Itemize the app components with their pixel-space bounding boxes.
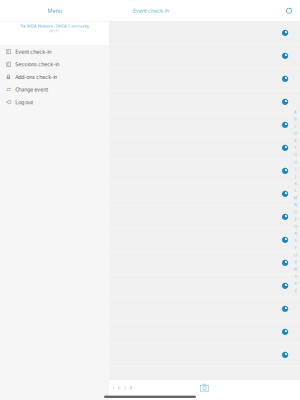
staticText: Event check-in — [15, 48, 51, 55]
staticText: The MBA Network - EMEA Community — [20, 23, 89, 29]
button[interactable]: The MBA Network - EMEA Community — [0, 22, 109, 45]
staticText: Change event — [15, 86, 48, 93]
button[interactable] — [109, 298, 300, 321]
button[interactable]: Section index — [292, 111, 299, 291]
staticText: C — [294, 123, 297, 129]
staticText: W — [293, 266, 297, 272]
button[interactable]: Menu — [0, 0, 109, 21]
staticText: I — [295, 166, 296, 172]
button[interactable] — [109, 91, 300, 114]
staticText: 0 — [118, 385, 120, 390]
staticText: A — [294, 109, 297, 114]
staticText: Z — [294, 288, 296, 293]
button[interactable]: Log out — [0, 96, 109, 108]
button[interactable] — [109, 275, 300, 298]
staticText: D — [294, 131, 297, 136]
button[interactable] — [109, 45, 300, 68]
button[interactable] — [109, 206, 300, 229]
staticText: Y — [294, 281, 296, 286]
staticText: V — [294, 259, 296, 265]
button[interactable] — [109, 321, 300, 344]
staticText: M — [293, 195, 297, 200]
button[interactable] — [109, 344, 300, 367]
staticText: L — [294, 188, 296, 193]
button[interactable]: Add-ons check-in — [0, 71, 109, 83]
button[interactable]: Sessions check-in — [0, 58, 109, 71]
staticText: Menu — [47, 7, 61, 14]
staticText: F — [294, 145, 296, 150]
staticText: Event check-in — [133, 7, 169, 14]
staticText: O — [294, 209, 297, 215]
staticText: J — [295, 173, 296, 179]
button[interactable]: Scan QR code — [200, 383, 209, 392]
staticText: G — [294, 152, 297, 157]
button[interactable]: Event check-in — [0, 45, 109, 58]
button[interactable] — [109, 68, 300, 91]
staticText: U — [294, 252, 297, 257]
staticText: K — [294, 181, 296, 186]
staticText: R — [294, 231, 296, 236]
staticText: Sessions check-in — [15, 61, 59, 68]
staticText: N — [294, 202, 297, 207]
staticText: Dec 31 — [49, 29, 59, 33]
staticText: Log out — [15, 99, 33, 106]
button[interactable]: Refresh — [283, 5, 295, 17]
staticText: 0 — [130, 385, 132, 390]
button[interactable] — [109, 183, 300, 206]
staticText: P — [294, 216, 296, 222]
button[interactable] — [109, 160, 300, 183]
button[interactable] — [109, 22, 300, 45]
button[interactable] — [109, 229, 300, 252]
button[interactable] — [109, 137, 300, 160]
button[interactable] — [109, 114, 300, 137]
button[interactable] — [109, 252, 300, 275]
staticText: B — [294, 116, 297, 122]
button[interactable]: Change event — [0, 83, 109, 96]
staticText: E — [294, 138, 296, 143]
staticText: T — [294, 245, 296, 250]
staticText: 1 — [112, 385, 114, 390]
staticText: S — [294, 238, 296, 243]
staticText: Add-ons check-in — [15, 73, 57, 80]
staticText: X — [294, 274, 296, 279]
staticText: Q — [294, 224, 297, 229]
staticText: 1 — [124, 385, 126, 390]
staticText: H — [294, 159, 297, 164]
